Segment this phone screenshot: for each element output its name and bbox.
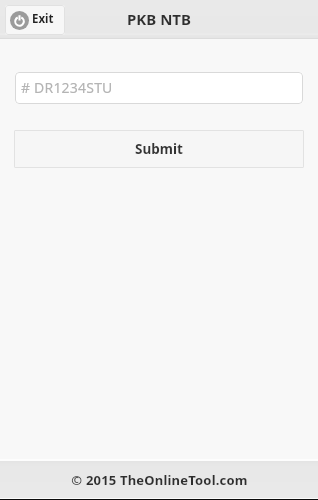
button[interactable]: Power [5,5,65,35]
other: Power [10,11,29,30]
staticText: © 2015 TheOnlineTool.com [71,471,248,489]
staticText: Submit [135,140,183,158]
staticText: # DR1234STU [21,78,113,97]
staticText: PKB NTB [127,9,191,29]
button[interactable]: Submit [14,130,304,168]
button[interactable]: # DR1234STU [15,72,303,104]
staticText: Exit [32,11,54,27]
